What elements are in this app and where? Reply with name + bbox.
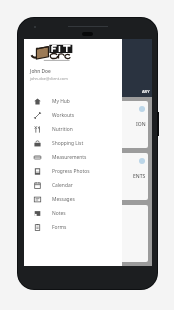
button[interactable]: My Hub: [24, 94, 122, 108]
button[interactable]: Measurements: [24, 150, 122, 164]
other: Notes: [34, 210, 41, 217]
button[interactable]: Shopping List: [24, 136, 122, 150]
staticText: Measurements: [52, 154, 87, 161]
staticText: Shopping List: [52, 140, 84, 147]
staticText: Progress Photos: [52, 168, 90, 175]
other: Progress Photos: [34, 168, 41, 175]
button[interactable]: Nutrition: [24, 122, 122, 136]
staticText: john-doe@client.com: [30, 76, 68, 81]
other: Workouts: [34, 112, 41, 119]
staticText: Workouts: [52, 112, 75, 119]
staticText: My Hub: [52, 98, 70, 105]
button[interactable]: Progress Photos: [24, 164, 122, 178]
button[interactable]: Notes: [24, 206, 122, 220]
staticText: Messages: [52, 196, 75, 203]
other: Shopping List: [34, 140, 41, 147]
staticText: John Doe: [30, 68, 51, 75]
staticText: Calendar: [52, 182, 73, 189]
staticText: ION: [136, 121, 146, 128]
staticText: Notes: [52, 210, 66, 217]
staticText: ENTS: [133, 173, 146, 180]
other: Forms: [34, 224, 41, 231]
other: My Hub: [34, 98, 41, 105]
other: Measurements: [34, 154, 41, 161]
staticText: Forms: [52, 224, 67, 231]
button[interactable]: Forms: [24, 220, 122, 234]
button[interactable]: Workouts: [24, 108, 122, 122]
other: Calendar: [34, 182, 41, 189]
staticText: ARY: [142, 89, 150, 94]
staticText: Nutrition: [52, 126, 73, 133]
button[interactable]: ION: [28, 101, 148, 148]
other: Messages: [34, 196, 41, 203]
other: Nutrition: [34, 126, 41, 133]
button[interactable]: Calendar: [24, 178, 122, 192]
button[interactable]: ENTS: [28, 153, 148, 200]
button[interactable]: Messages: [24, 192, 122, 206]
